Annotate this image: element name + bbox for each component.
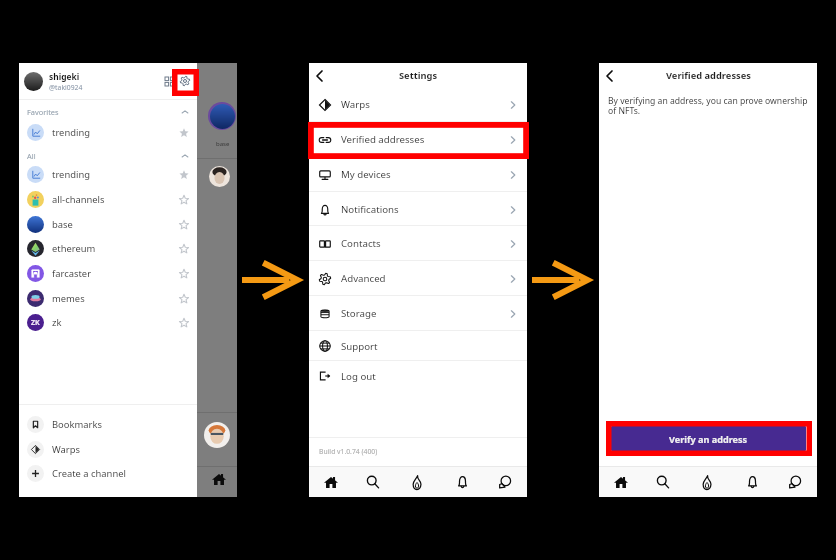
staticText: all-channels (52, 193, 179, 206)
button[interactable]: Messages (774, 467, 816, 497)
staticText: zk (52, 316, 179, 329)
staticText: trending (52, 126, 179, 139)
button[interactable]: Apps (161, 73, 177, 89)
button[interactable]: farcaster (19, 261, 197, 286)
staticText: Support (341, 340, 518, 353)
button[interactable]: Home (600, 467, 642, 497)
staticText: @taki0924 (49, 83, 83, 92)
staticText: farcaster (52, 267, 179, 280)
staticText: Favorites (27, 107, 181, 117)
staticText: Verified addresses (666, 69, 751, 82)
staticText: ethereum (52, 242, 179, 255)
staticText: My devices (341, 168, 508, 181)
staticText: Advanced (341, 272, 508, 285)
button[interactable]: Notifications (441, 467, 483, 497)
button[interactable]: trending (19, 162, 197, 187)
button[interactable]: Verify an address (611, 426, 806, 451)
staticText: Verified addresses (341, 133, 508, 146)
button[interactable]: My devices (309, 157, 527, 192)
button[interactable]: Log out (309, 361, 527, 391)
button[interactable]: Settings (177, 73, 193, 89)
button[interactable]: Back (600, 67, 618, 85)
button[interactable]: Verified addresses (309, 122, 527, 157)
button[interactable]: Notifications (309, 192, 527, 227)
button[interactable]: Search (352, 467, 394, 497)
staticText: Contacts (341, 237, 508, 250)
button[interactable]: memes (19, 286, 197, 311)
button[interactable]: Messages (484, 467, 526, 497)
staticText: base (52, 218, 179, 231)
staticText: Warps (52, 443, 80, 456)
button[interactable]: Notifications (731, 467, 773, 497)
button[interactable]: Warps (19, 437, 197, 462)
staticText: base (216, 140, 230, 148)
staticText: Bookmarks (52, 418, 102, 431)
staticText: Create a channel (52, 467, 126, 480)
staticText: Build v1.0.74 (400) (319, 447, 378, 456)
button[interactable]: ZK (19, 310, 197, 335)
button[interactable]: Trending (396, 467, 438, 497)
button[interactable]: Bookmarks (19, 412, 197, 437)
button[interactable]: Storage (309, 296, 527, 331)
staticText: Verify an address (669, 433, 748, 445)
staticText: Storage (341, 307, 508, 320)
staticText: Notifications (341, 203, 508, 216)
staticText: Settings (399, 69, 438, 82)
button[interactable]: Search (642, 467, 684, 497)
button[interactable]: Back (310, 67, 328, 85)
button[interactable]: Trending (686, 467, 728, 497)
staticText: memes (52, 292, 179, 305)
button[interactable]: Create a channel (19, 461, 197, 486)
staticText: By verifying an address, you can prove o… (608, 95, 811, 117)
staticText: trending (52, 168, 179, 181)
staticText: ZK (31, 318, 40, 328)
staticText: Log out (341, 370, 518, 383)
button[interactable]: Contacts (309, 226, 527, 261)
button[interactable]: base (19, 212, 197, 237)
button[interactable]: Advanced (309, 261, 527, 296)
button[interactable]: all-channels (19, 187, 197, 212)
button[interactable]: trending (19, 120, 197, 145)
button[interactable]: Warps (309, 87, 527, 122)
button[interactable]: Home (310, 467, 352, 497)
staticText: Warps (341, 98, 508, 111)
button[interactable]: ethereum (19, 236, 197, 261)
staticText: shigeki (49, 71, 80, 82)
button[interactable]: Support (309, 331, 527, 361)
staticText: All (27, 151, 181, 161)
